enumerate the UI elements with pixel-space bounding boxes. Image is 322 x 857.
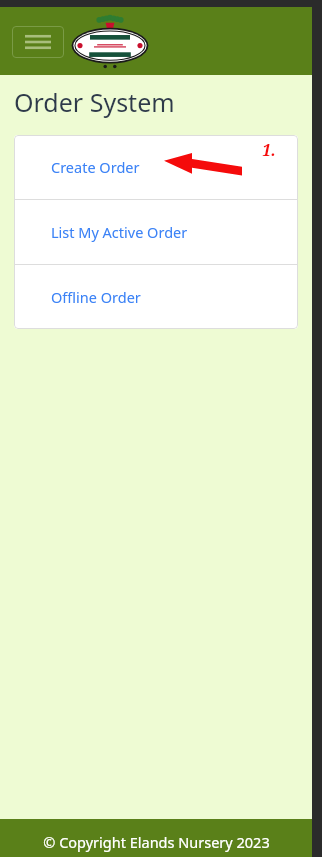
staticText: Offline Order [51,287,141,307]
staticText: 1. [262,139,276,161]
staticText: List My Active Order [51,222,188,242]
staticText: Create Order [51,157,140,177]
staticText: © Copyright Elands Nursery 2023 [43,832,270,852]
staticText: Order System [14,85,175,119]
button[interactable]: Elands Nursery home [70,14,150,76]
button[interactable]: Menu [12,26,64,58]
button[interactable]: Offline Order [14,265,298,329]
button[interactable]: List My Active Order [14,200,298,264]
button[interactable]: Create Order [14,135,298,199]
